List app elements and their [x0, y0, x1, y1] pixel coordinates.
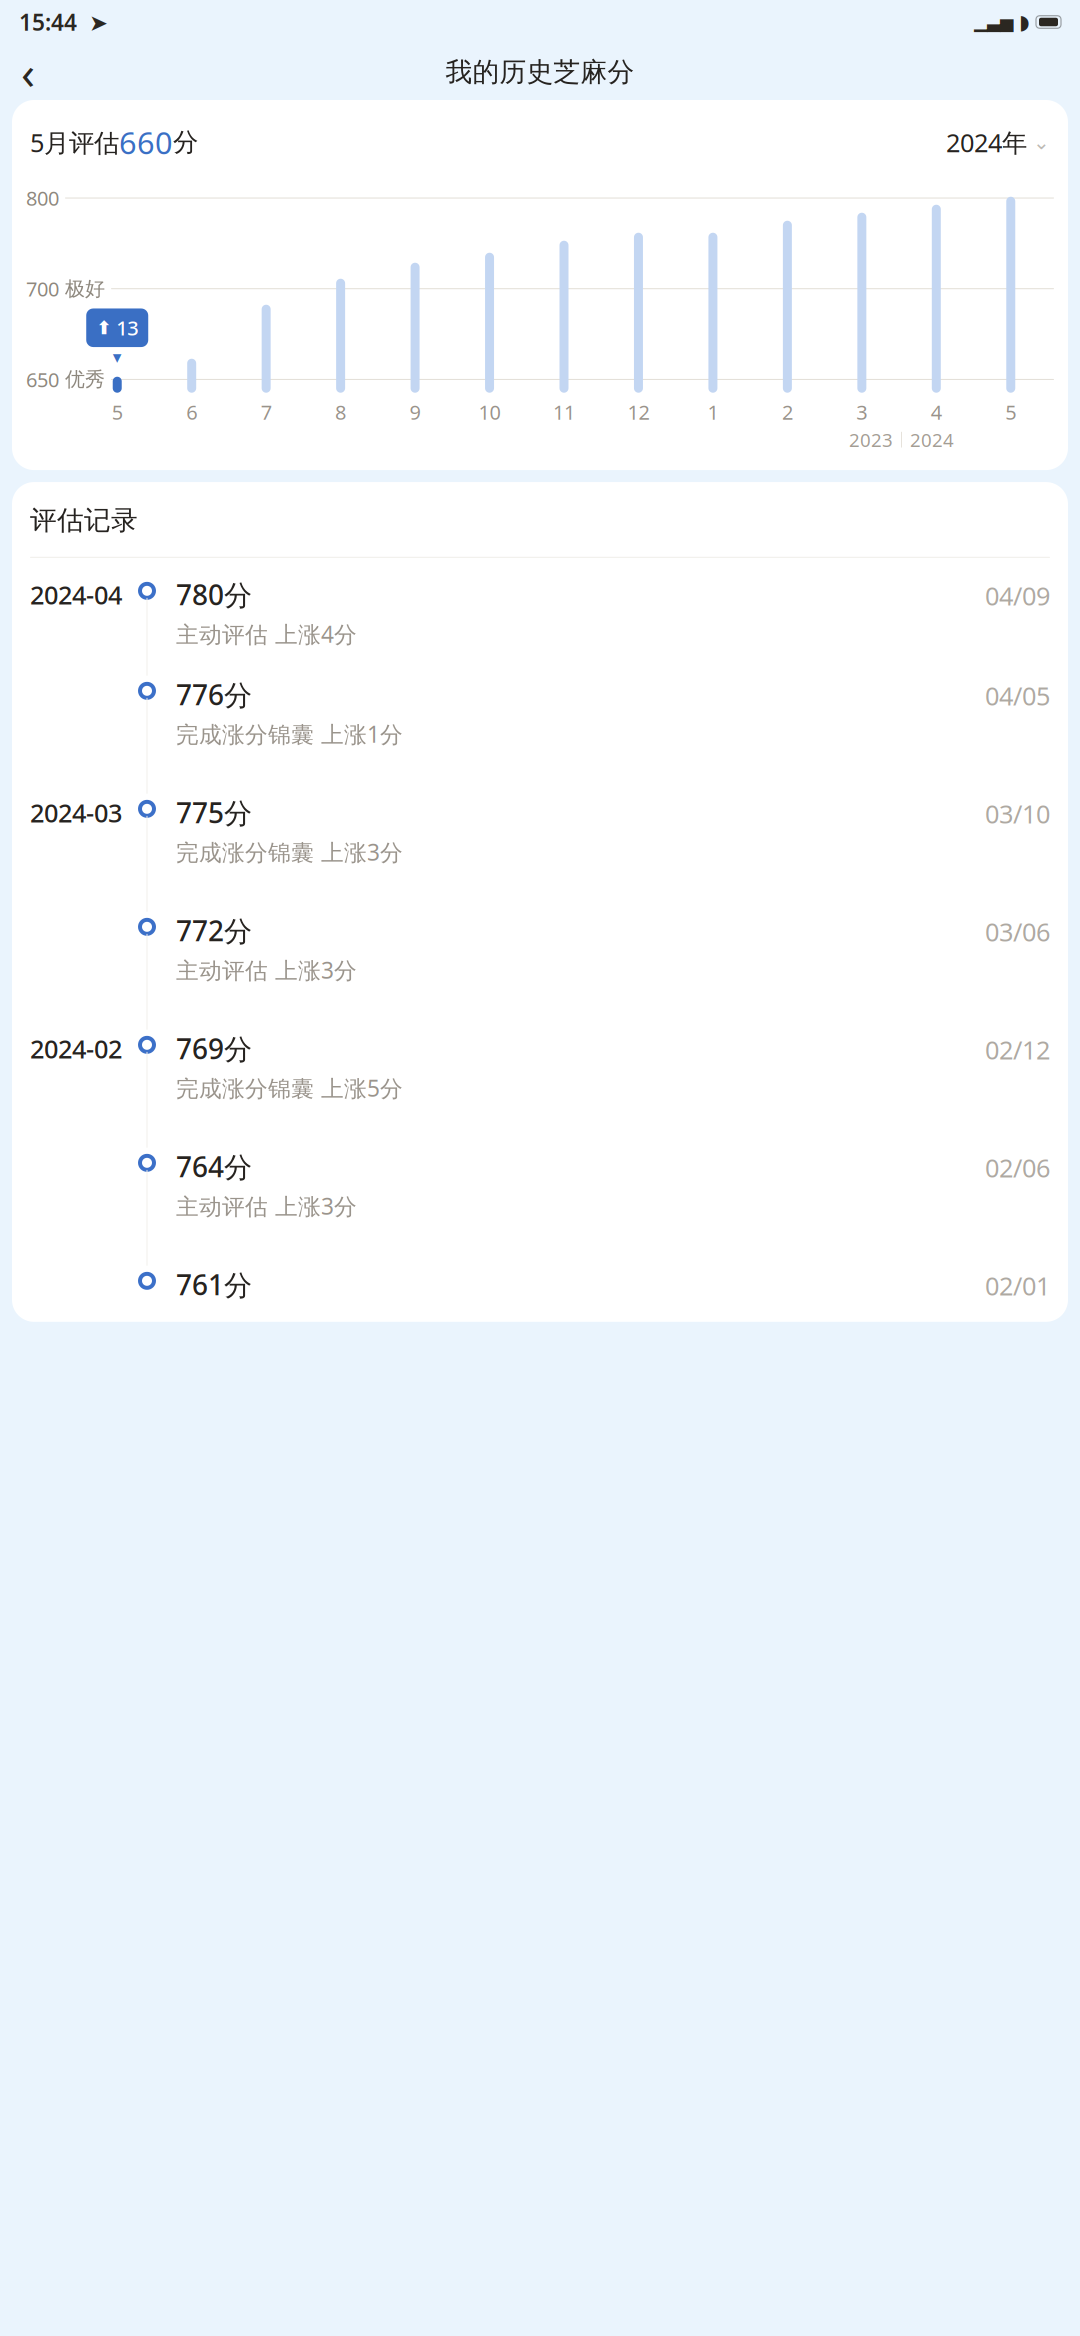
staticText: ◗ [1019, 11, 1030, 33]
staticText: 完成涨分锦囊 上涨1分 [176, 719, 403, 749]
button[interactable] [12, 912, 1068, 1030]
staticText: 13 [116, 314, 138, 341]
staticText: 主动评估 上涨4分 [176, 619, 357, 649]
staticText: 分 [173, 127, 198, 158]
staticText: 完成涨分锦囊 上涨3分 [176, 837, 403, 867]
staticText: 2 [782, 399, 793, 425]
staticText: 3 [856, 399, 867, 425]
staticText: ⌄ [1033, 131, 1050, 154]
button[interactable]: 返回 [6, 50, 50, 94]
button[interactable] [12, 1266, 1068, 1322]
staticText: 02/12 [985, 1033, 1050, 1066]
staticText: 11 [553, 399, 575, 425]
staticText: ▁▃▅ [974, 12, 1013, 32]
staticText: 02/06 [985, 1151, 1050, 1184]
staticText: 660 [119, 122, 173, 163]
staticText: 769分 [176, 1030, 252, 1067]
button[interactable]: 2024-03 [12, 794, 1068, 912]
staticText: 800 [26, 185, 59, 211]
staticText: 9 [410, 399, 421, 425]
staticText: 5 [1005, 399, 1016, 425]
staticText: 2024年 [946, 125, 1027, 159]
staticText: 6 [186, 399, 197, 425]
staticText: 04/05 [985, 679, 1050, 712]
staticText: 5 [112, 399, 123, 425]
staticText: 评估记录 [30, 504, 138, 537]
button[interactable]: 2024-02 [12, 1030, 1068, 1148]
staticText: 02/01 [985, 1269, 1050, 1302]
staticText: 12 [627, 399, 649, 425]
staticText: 4 [931, 399, 942, 425]
staticText: 2024-03 [30, 796, 122, 829]
staticText: 完成涨分锦囊 上涨5分 [176, 1073, 403, 1103]
staticText: ‹ [21, 42, 35, 102]
staticText: 776分 [176, 676, 252, 713]
staticText: 2024 [910, 427, 954, 452]
staticText: 主动评估 上涨3分 [176, 955, 357, 985]
staticText: 04/09 [985, 579, 1050, 612]
staticText: 优秀 [65, 367, 105, 392]
staticText: 2024-02 [30, 1032, 122, 1065]
staticText: 8 [335, 399, 346, 425]
staticText: 761分 [176, 1266, 252, 1303]
staticText: ⬆ [96, 317, 112, 338]
staticText: 700 [26, 275, 59, 302]
staticText: 我的历史芝麻分 [445, 56, 634, 88]
staticText: 03/10 [985, 797, 1050, 830]
staticText: 03/06 [985, 915, 1050, 948]
staticText: 775分 [176, 794, 252, 831]
staticText: 极好 [65, 276, 105, 301]
staticText: 15:44 ➤ [19, 7, 108, 37]
staticText: 772分 [176, 912, 252, 949]
staticText: 764分 [176, 1148, 252, 1185]
staticText: ▾ [113, 347, 122, 367]
staticText: 650 [26, 366, 59, 393]
staticText: 2024-04 [30, 578, 122, 611]
staticText: 主动评估 上涨3分 [176, 1191, 357, 1221]
button[interactable]: 2024年 [946, 125, 1050, 159]
staticText: 1 [707, 399, 718, 425]
button[interactable] [12, 1148, 1068, 1266]
staticText: 2023 [849, 427, 893, 452]
staticText: 10 [478, 399, 500, 425]
staticText: 780分 [176, 576, 252, 613]
staticText: 5月评估 [30, 125, 119, 159]
button[interactable]: 2024-04 [12, 558, 1068, 676]
button[interactable] [12, 676, 1068, 794]
staticText: 7 [261, 399, 272, 425]
